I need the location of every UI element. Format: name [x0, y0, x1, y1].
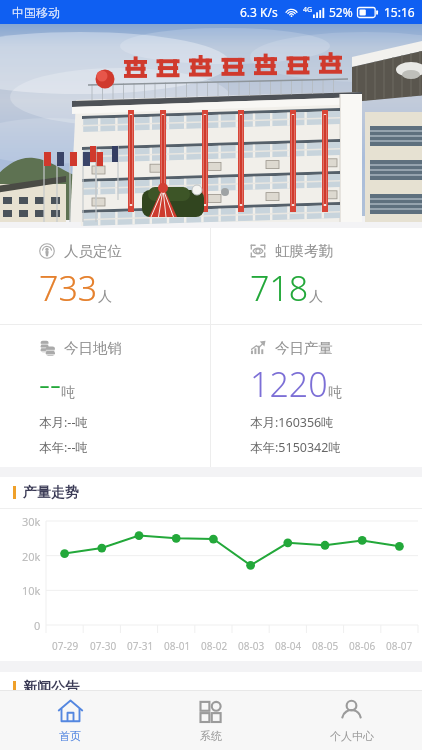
staticText: 52% [329, 4, 353, 20]
staticText: 虹膜考勤 [275, 242, 333, 260]
button[interactable]: 虹膜考勤 [211, 228, 422, 324]
staticText: 08-06 [349, 639, 376, 653]
staticText: 6.3 K/s [240, 4, 278, 20]
staticText: 今日地销 [64, 339, 122, 357]
staticText: 4G [303, 5, 313, 15]
staticText: 个人中心 [330, 729, 374, 743]
staticText: 吨 [328, 384, 342, 402]
staticText: 08-03 [238, 639, 265, 653]
staticText: 产量走势 [23, 484, 79, 502]
staticText: 本月:--吨 [39, 414, 88, 431]
staticText: 07-31 [127, 639, 154, 653]
staticText: 新闻公告 [23, 679, 79, 697]
staticText: 1220 [250, 361, 328, 407]
staticText: 本年:5150342吨 [250, 439, 341, 456]
button[interactable]: 大佛寺矿业公司 banner [0, 24, 422, 216]
staticText: 08-04 [275, 639, 302, 653]
staticText: 08-05 [312, 639, 339, 653]
staticText: 人 [309, 288, 323, 306]
button[interactable]: 系统 [140, 691, 281, 750]
staticText: 07-29 [52, 639, 79, 653]
staticText: 本月:160356吨 [250, 414, 334, 431]
staticText: 30k [22, 514, 41, 529]
staticText: 首页 [59, 729, 81, 743]
staticText: 0 [34, 618, 41, 633]
button[interactable]: 个人中心 [281, 691, 422, 750]
button[interactable]: 人员定位 [0, 228, 210, 324]
staticText: 733 [39, 265, 98, 311]
staticText: 人 [98, 288, 112, 306]
staticText: 人员定位 [64, 242, 122, 260]
staticText: 718 [250, 265, 309, 311]
staticText: 07-30 [90, 639, 117, 653]
button[interactable]: 今日地销 [0, 325, 210, 467]
staticText: 08-01 [164, 639, 191, 653]
staticText: 15:16 [384, 4, 415, 20]
staticText: -- [39, 361, 61, 407]
staticText: 08-02 [201, 639, 228, 653]
staticText: 20k [22, 549, 41, 564]
staticText: 系统 [200, 729, 222, 743]
button[interactable]: 首页 [0, 691, 140, 750]
staticText: 今日产量 [275, 339, 333, 357]
staticText: 吨 [61, 384, 75, 402]
staticText: 08-07 [386, 639, 413, 653]
staticText: 10k [22, 583, 41, 598]
staticText: 本年:--吨 [39, 439, 88, 456]
button[interactable]: 今日产量 [211, 325, 422, 467]
staticText: 中国移动 [12, 5, 60, 20]
